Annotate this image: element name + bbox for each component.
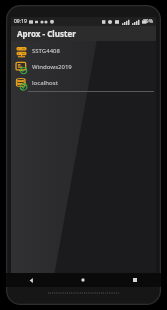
- button[interactable]: localhost: [11, 75, 156, 91]
- staticText: Windows2019: [32, 63, 72, 71]
- button[interactable]: Home: [57, 273, 109, 287]
- button[interactable]: SSTG4408: [11, 43, 156, 59]
- button[interactable]: Aprox - Cluster: [11, 26, 156, 41]
- staticText: 79%: [143, 18, 153, 25]
- staticText: 09:19: [14, 18, 27, 25]
- button[interactable]: Back: [6, 273, 57, 287]
- button[interactable]: Windows2019: [11, 59, 156, 75]
- staticText: SSTG4408: [32, 47, 60, 55]
- button[interactable]: Recent apps: [109, 273, 161, 287]
- staticText: Aprox - Cluster: [17, 28, 76, 39]
- staticText: localhost: [32, 79, 58, 87]
